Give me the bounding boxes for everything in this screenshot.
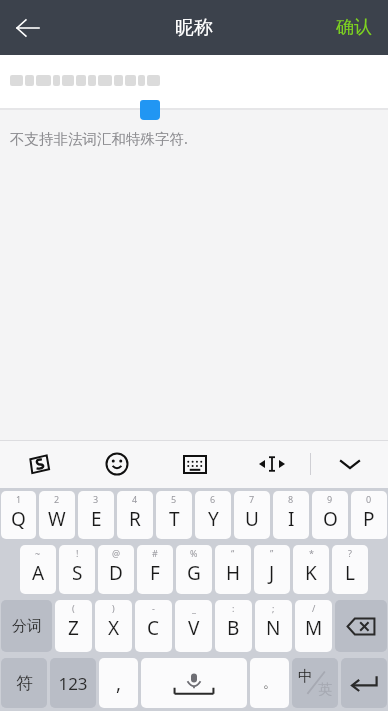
staticText: : xyxy=(232,602,235,614)
button[interactable]: 分词 xyxy=(1,600,52,652)
button[interactable]: # xyxy=(137,545,173,594)
staticText: 5 xyxy=(171,493,177,505)
staticText: 不支持非法词汇和特殊字符. xyxy=(10,128,188,148)
button[interactable]: ! xyxy=(59,545,95,594)
button[interactable]: Keyboard layout xyxy=(156,440,233,488)
staticText: I xyxy=(288,506,295,532)
button[interactable]: : xyxy=(215,600,252,652)
button[interactable]: % xyxy=(176,545,212,594)
staticText: @ xyxy=(112,547,121,559)
button[interactable]: 9 xyxy=(312,491,348,539)
staticText: M xyxy=(305,615,323,641)
button[interactable]: ~ xyxy=(20,545,56,594)
button[interactable]: Chinese English toggle xyxy=(292,658,338,708)
button[interactable]: ( xyxy=(55,600,92,652)
staticText: 中 xyxy=(298,667,313,686)
button[interactable]: 5 xyxy=(156,491,192,539)
staticText: T xyxy=(169,506,180,532)
staticText: A xyxy=(32,560,45,586)
staticText: ) xyxy=(112,602,115,614)
button[interactable]: Back xyxy=(0,0,56,55)
staticText: H xyxy=(226,560,241,586)
button[interactable]: - xyxy=(135,600,172,652)
button[interactable]: ? xyxy=(332,545,368,594)
button[interactable]: ) xyxy=(95,600,132,652)
staticText: 7 xyxy=(249,493,255,505)
staticText: Z xyxy=(68,615,79,641)
staticText: ( xyxy=(72,602,75,614)
staticText: % xyxy=(190,547,198,559)
button[interactable]: 3 xyxy=(78,491,114,539)
button[interactable]: Hide keyboard xyxy=(311,440,388,488)
button[interactable]: 8 xyxy=(273,491,309,539)
staticText: ! xyxy=(76,547,79,559)
staticText: N xyxy=(266,615,281,641)
staticText: E xyxy=(91,506,102,532)
staticText: U xyxy=(245,506,259,532)
staticText: S xyxy=(72,560,83,586)
staticText: ; xyxy=(272,602,275,614)
staticText: J xyxy=(269,560,275,586)
staticText: L xyxy=(345,560,355,586)
staticText: 3 xyxy=(93,493,99,505)
staticText: Q xyxy=(11,506,26,532)
staticText: K xyxy=(305,560,317,586)
staticText: * xyxy=(309,547,314,559)
staticText: / xyxy=(312,602,316,614)
button[interactable]: Sogou input method xyxy=(0,440,78,488)
button[interactable]: Space, voice input xyxy=(141,658,247,708)
button[interactable]: * xyxy=(293,545,329,594)
staticText: G xyxy=(187,560,201,586)
staticText: 6 xyxy=(210,493,216,505)
button[interactable]: 7 xyxy=(234,491,270,539)
staticText: B xyxy=(227,615,240,641)
button[interactable]: _ xyxy=(175,600,212,652)
button[interactable]: 2 xyxy=(39,491,75,539)
staticText: ” xyxy=(270,547,274,559)
staticText: R xyxy=(129,506,141,532)
staticText: , xyxy=(116,670,122,696)
button[interactable]: 6 xyxy=(195,491,231,539)
staticText: _ xyxy=(192,602,196,614)
staticText: V xyxy=(188,615,200,641)
staticText: 2 xyxy=(54,493,60,505)
staticText: 9 xyxy=(327,493,333,505)
button[interactable]: , xyxy=(99,658,138,708)
button[interactable]: 符 xyxy=(1,658,47,708)
button[interactable]: “ xyxy=(215,545,251,594)
staticText: 符 xyxy=(16,673,33,694)
button[interactable]: 0 xyxy=(351,491,387,539)
button[interactable]: 确认 xyxy=(320,0,388,55)
staticText: Y xyxy=(208,506,219,532)
button[interactable]: 1 xyxy=(1,491,36,539)
button[interactable]: / xyxy=(295,600,332,652)
staticText: X xyxy=(108,615,120,641)
staticText: C xyxy=(147,615,160,641)
staticText: 0 xyxy=(366,493,372,505)
staticText: # xyxy=(152,547,158,559)
staticText: D xyxy=(109,560,123,586)
staticText: 英 xyxy=(318,681,332,699)
staticText: P xyxy=(363,506,375,532)
staticText: - xyxy=(152,602,155,614)
staticText: O xyxy=(323,506,338,532)
staticText: 123 xyxy=(58,672,88,695)
button[interactable]: Emoji xyxy=(78,440,156,488)
button[interactable]: Enter xyxy=(341,658,387,708)
staticText: 分词 xyxy=(12,617,42,636)
button[interactable]: ; xyxy=(255,600,292,652)
staticText: 昵称 xyxy=(175,16,213,40)
staticText: 1 xyxy=(16,493,22,505)
button[interactable]: Backspace xyxy=(335,600,387,652)
button[interactable]: 。 xyxy=(250,658,289,708)
button[interactable]: @ xyxy=(98,545,134,594)
button[interactable]: 4 xyxy=(117,491,153,539)
button[interactable]: ” xyxy=(254,545,290,594)
staticText: 4 xyxy=(132,493,138,505)
staticText: ~ xyxy=(35,547,41,559)
button[interactable]: 123 xyxy=(50,658,96,708)
button[interactable]: Move cursor xyxy=(233,440,310,488)
staticText: “ xyxy=(231,547,235,559)
staticText: W xyxy=(48,506,66,532)
staticText: 。 xyxy=(263,674,277,692)
